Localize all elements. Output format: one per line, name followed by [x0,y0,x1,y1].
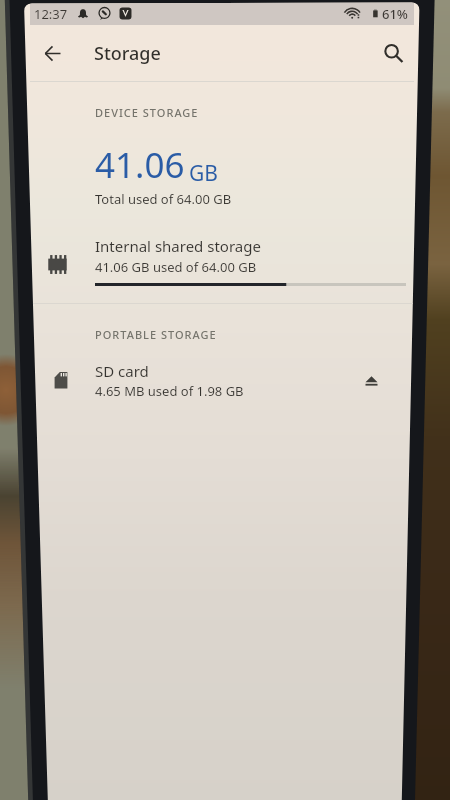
staticText: DEVICE STORAGE [95,105,199,120]
staticText: Internal shared storage [95,236,261,256]
button[interactable]: Search [373,33,413,73]
button[interactable]: Internal shared storage [30,236,414,298]
staticText: 12:37 [34,5,68,23]
staticText: PORTABLE STORAGE [95,327,217,342]
staticText: 41.06 [95,141,185,189]
button[interactable]: Eject SD card [351,360,391,400]
staticText: 41.06 GB used of 64.00 GB [95,258,257,276]
staticText: SD card [95,361,149,381]
staticText: Total used of 64.00 GB [95,190,232,208]
button[interactable]: Back [32,33,72,73]
button[interactable]: SD card [30,361,414,409]
staticText: 4.65 MB used of 1.98 GB [95,382,244,400]
staticText: 61% [382,5,408,23]
staticText: Storage [94,41,161,66]
staticText: GB [189,159,218,188]
